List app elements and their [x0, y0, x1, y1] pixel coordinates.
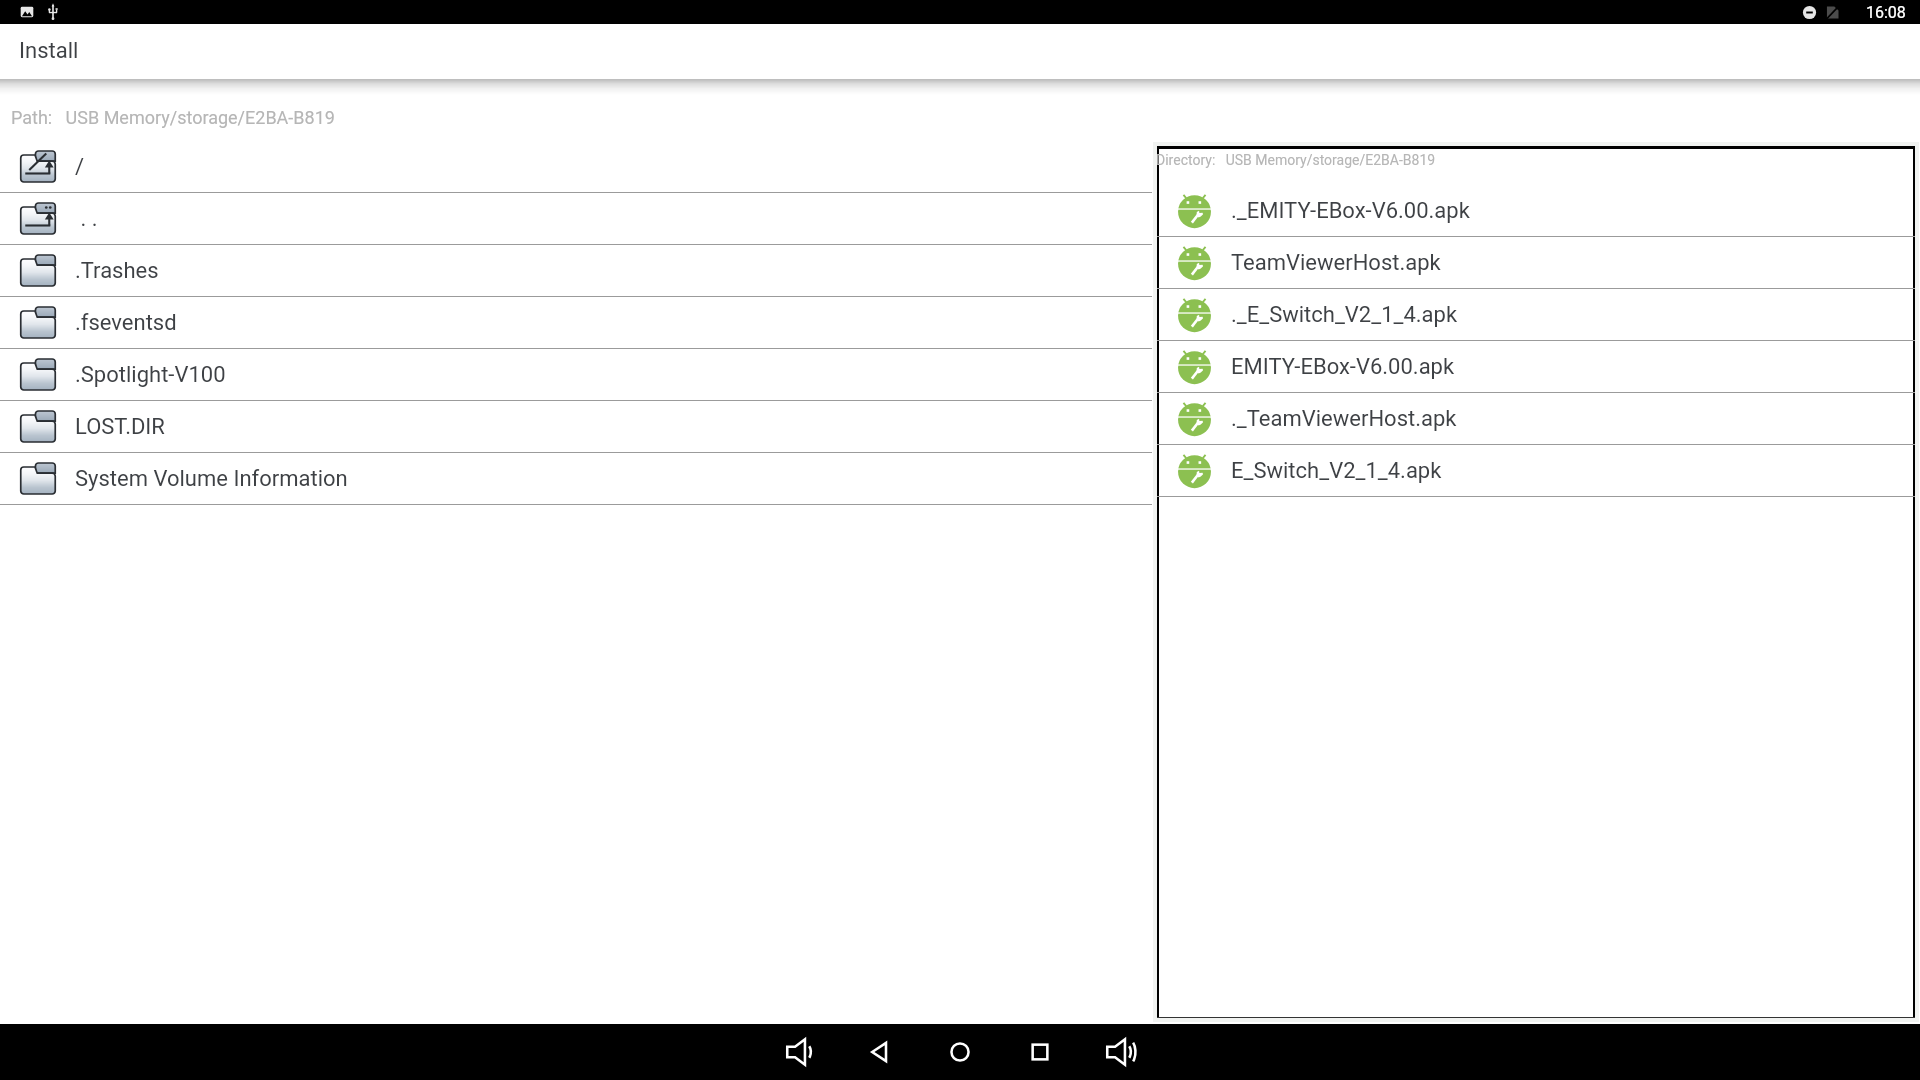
staticText: System Volume Information [75, 466, 348, 492]
button[interactable]: Home [929, 1024, 991, 1080]
button[interactable]: LOST.DIR [0, 401, 1152, 453]
button[interactable]: Volume up [1089, 1024, 1151, 1080]
button[interactable]: ._E_Switch_V2_1_4.apk [1157, 289, 1915, 341]
button[interactable]: ._EMITY-EBox-V6.00.apk [1157, 185, 1915, 237]
button[interactable]: .Trashes [0, 245, 1152, 297]
button[interactable]: Volume down [769, 1024, 831, 1080]
staticText: . . [75, 206, 98, 232]
button[interactable]: TeamViewerHost.apk [1157, 237, 1915, 289]
button[interactable]: Recents [1009, 1024, 1071, 1080]
staticText: .Trashes [75, 258, 159, 284]
staticText: EMITY-EBox-V6.00.apk [1231, 354, 1455, 380]
staticText: E_Switch_V2_1_4.apk [1231, 458, 1442, 484]
staticText: ._E_Switch_V2_1_4.apk [1231, 302, 1458, 328]
staticText: Directory: USB Memory/storage/E2BA-B819 [1156, 152, 1436, 168]
button[interactable]: .Spotlight-V100 [0, 349, 1152, 401]
staticText: TeamViewerHost.apk [1231, 250, 1441, 276]
button[interactable]: .fseventsd [0, 297, 1152, 349]
staticText: ._TeamViewerHost.apk [1231, 406, 1457, 432]
staticText: Path: USB Memory/storage/E2BA-B819 [11, 107, 335, 128]
staticText: LOST.DIR [75, 414, 165, 440]
button[interactable]: System Volume Information [0, 453, 1152, 505]
staticText: ._EMITY-EBox-V6.00.apk [1231, 198, 1470, 224]
staticText: .fseventsd [75, 310, 177, 336]
button[interactable]: ._TeamViewerHost.apk [1157, 393, 1915, 445]
button[interactable]: / [0, 141, 1152, 193]
button[interactable]: Back [849, 1024, 911, 1080]
button[interactable]: E_Switch_V2_1_4.apk [1157, 445, 1915, 497]
staticText: / [75, 154, 85, 180]
staticText: 16:08 [1866, 3, 1906, 22]
staticText: Install [19, 38, 79, 64]
button[interactable]: . . [0, 193, 1152, 245]
staticText: .Spotlight-V100 [75, 362, 226, 388]
button[interactable]: EMITY-EBox-V6.00.apk [1157, 341, 1915, 393]
